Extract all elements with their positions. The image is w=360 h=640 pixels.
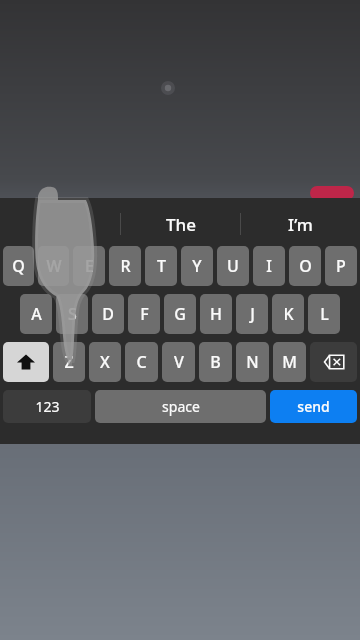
staticText: V [174,351,184,373]
staticText: I’m [288,213,313,236]
staticText: Y [192,255,202,277]
button[interactable]: B [199,342,232,382]
button[interactable]: Z [53,342,85,382]
staticText: D [102,303,114,325]
staticText: W [46,255,62,277]
button[interactable]: C [125,342,158,382]
staticText: G [174,303,186,325]
button[interactable]: F [128,294,160,334]
button[interactable]: X [89,342,121,382]
staticText: U [227,255,239,277]
staticText: I [266,255,272,277]
button[interactable]: I’m [241,202,360,246]
staticText: F [140,303,149,325]
staticText: K [283,303,294,325]
staticText: 123 [35,397,60,416]
button[interactable]: J [236,294,268,334]
button[interactable]: U [217,246,249,286]
button[interactable]: T [145,246,177,286]
staticText: M [282,351,297,373]
staticText: N [246,351,259,373]
button[interactable]: Backspace [310,342,357,382]
button[interactable]: send [270,390,357,423]
button[interactable]: Shift [3,342,49,382]
staticText: The [166,213,196,236]
button[interactable]: M [273,342,306,382]
staticText: S [68,303,77,325]
button[interactable]: H [200,294,232,334]
button[interactable]: V [162,342,195,382]
staticText: H [210,303,222,325]
button[interactable]: W [38,246,69,286]
staticText: E [85,255,94,277]
button[interactable]: space [95,390,266,423]
staticText: X [100,351,110,373]
staticText: A [31,303,42,325]
button[interactable] [0,202,120,246]
button[interactable]: I [253,246,285,286]
button[interactable]: Y [181,246,213,286]
staticText: T [157,255,166,277]
staticText: Q [12,255,25,277]
button[interactable]: G [164,294,196,334]
button[interactable]: L [308,294,340,334]
staticText: R [120,255,131,277]
button[interactable]: R [109,246,141,286]
button[interactable]: A [20,294,52,334]
staticText: Z [64,351,74,373]
button[interactable]: E [73,246,105,286]
button[interactable]: 123 [3,390,91,423]
staticText: L [320,303,329,325]
button[interactable]: S [56,294,88,334]
staticText: B [210,351,221,373]
button[interactable]: D [92,294,124,334]
button[interactable]: P [325,246,357,286]
button[interactable]: Q [3,246,34,286]
button[interactable]: K [272,294,304,334]
staticText: O [299,255,312,277]
staticText: C [136,351,147,373]
staticText: P [336,255,346,277]
staticText: space [162,397,200,416]
button[interactable]: N [236,342,269,382]
staticText: J [250,303,255,325]
staticText: send [297,397,330,416]
button[interactable]: The [121,202,240,246]
button[interactable]: O [289,246,321,286]
